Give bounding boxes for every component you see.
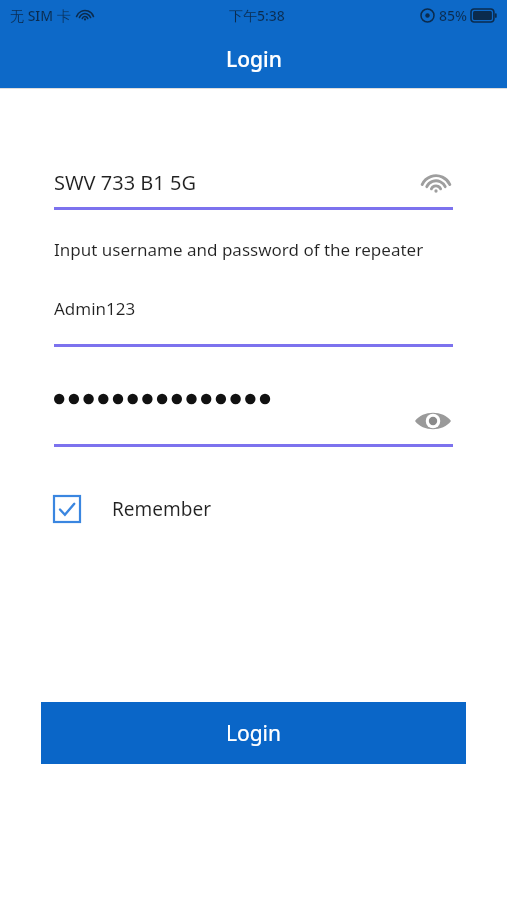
staticText: Admin123 (54, 297, 136, 320)
staticText: Input username and password of the repea… (54, 238, 424, 261)
staticText: Remember (112, 496, 212, 522)
button[interactable]: Login (41, 702, 466, 764)
button[interactable]: Remember (54, 487, 212, 531)
staticText: 下午5:38 (229, 6, 285, 25)
staticText: 85% (439, 6, 467, 25)
button[interactable]: Wi-Fi (419, 165, 453, 199)
staticText: SWV 733 B1 5G (54, 169, 196, 196)
staticText: Login (226, 719, 282, 748)
button[interactable]: Show password (413, 401, 453, 441)
staticText: Login (226, 45, 282, 74)
staticText: 无 SIM 卡 (10, 6, 71, 25)
